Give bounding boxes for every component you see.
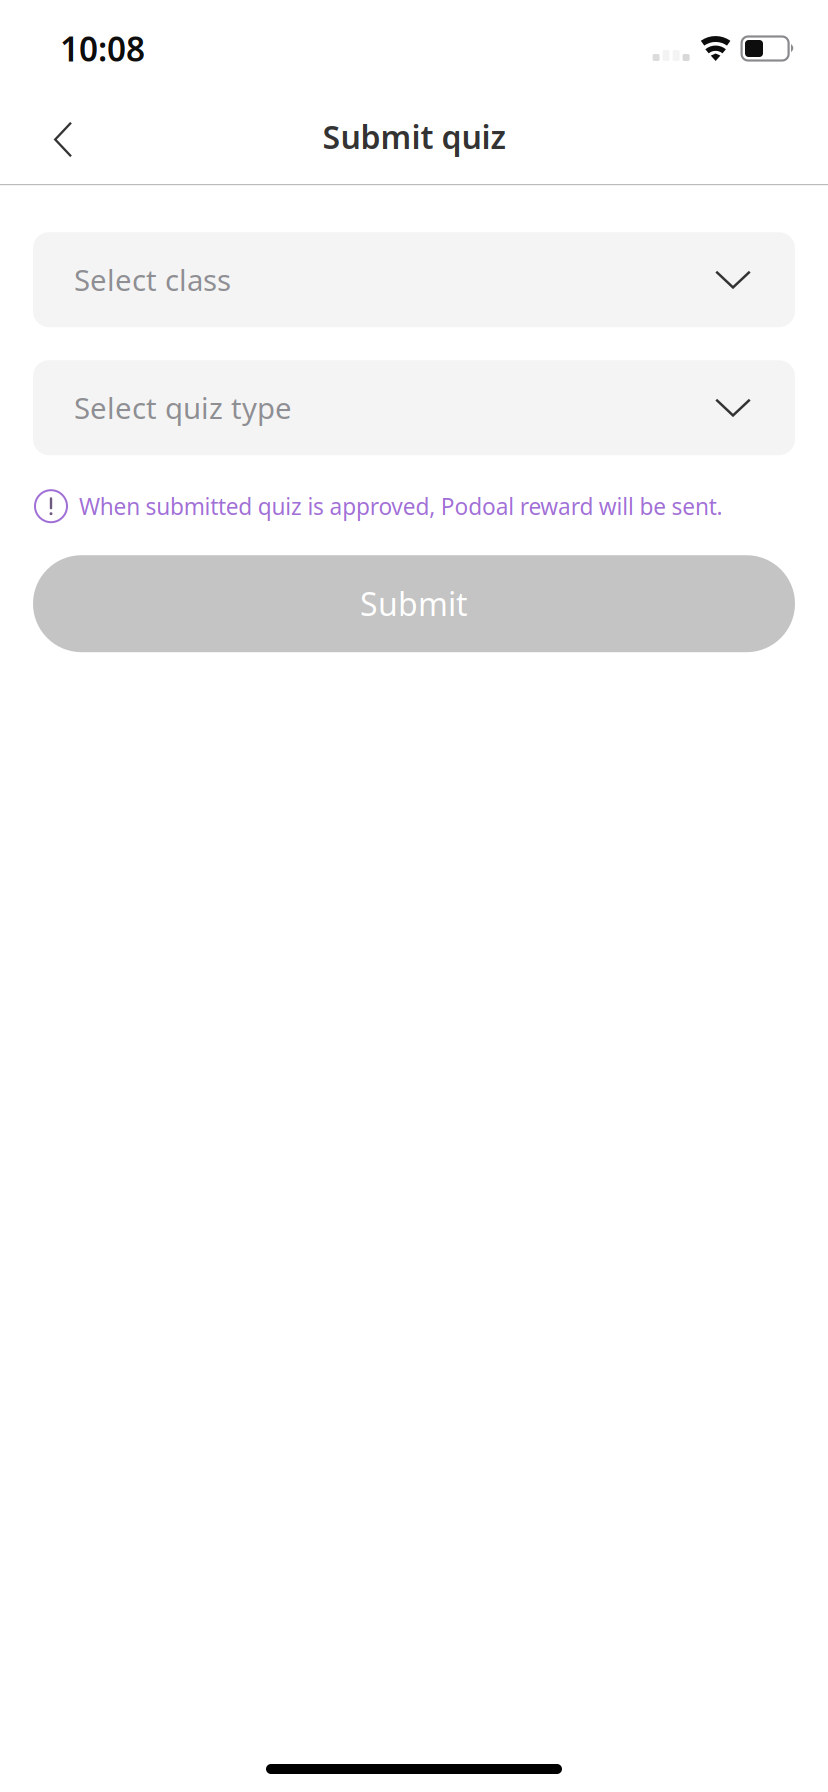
staticText: Select quiz type <box>74 388 292 427</box>
staticText: Submit <box>360 582 468 625</box>
staticText: When submitted quiz is approved, Podoal … <box>79 491 722 521</box>
button[interactable]: Back <box>0 94 102 184</box>
staticText: Select class <box>74 260 231 299</box>
button[interactable]: Select class <box>33 232 795 327</box>
staticText: Submit quiz <box>322 115 505 158</box>
staticText: 10:08 <box>60 26 145 71</box>
button[interactable]: Submit <box>33 555 795 652</box>
button[interactable]: Select quiz type <box>33 360 795 455</box>
